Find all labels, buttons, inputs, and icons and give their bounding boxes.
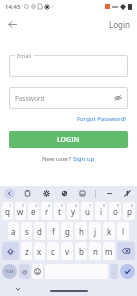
staticText: 2 [22,203,25,208]
button[interactable]: More [104,188,115,199]
staticText: d [37,226,42,237]
button[interactable]: Settings [41,188,52,199]
staticText: @ [22,268,28,276]
staticText: 3 [35,203,38,208]
staticText: y [71,206,76,217]
staticText: › [52,3,54,10]
staticText: 14:45 [5,3,21,11]
button[interactable]: f [47,222,59,240]
staticText: q [5,206,10,217]
staticText: ?123 [5,269,14,274]
staticText: v [65,246,70,257]
staticText: m [105,246,113,257]
button[interactable]: Clipboard [22,188,33,199]
button[interactable]: LOGIN [9,131,128,148]
button[interactable]: b [75,242,87,260]
staticText: 0 [131,203,134,208]
staticText: g [65,226,70,237]
button[interactable]: s [21,222,32,240]
staticText: k [107,226,112,237]
staticText: Password [15,94,45,103]
staticText: p [127,206,132,217]
button[interactable]: . [110,264,118,279]
button[interactable]: Translate [77,188,88,199]
staticText: Forgot Password! [77,115,126,123]
button[interactable]: Forgot Password! [75,114,128,124]
button[interactable]: r [41,202,52,220]
button[interactable]: Back [3,15,21,33]
button[interactable]: d [34,222,45,240]
button[interactable]: Hide keyboard [13,284,23,294]
button[interactable]: l [117,222,129,240]
staticText: h [79,226,84,237]
button[interactable]: z [21,242,32,260]
staticText: 9 [117,203,120,208]
staticText: 1 [9,203,12,208]
button[interactable]: Show password [112,92,124,104]
button[interactable]: @ [19,264,30,279]
staticText: LOGIN [57,135,80,145]
button[interactable]: t [54,202,65,220]
button[interactable]: Done [120,264,135,279]
staticText: Sign up [73,155,95,163]
staticText: j [94,226,97,237]
button[interactable]: k [103,222,115,240]
staticText: 8 [103,203,106,208]
button[interactable]: ?123 [2,264,17,279]
button[interactable]: n [89,242,101,260]
button[interactable]: Stickers [59,188,70,199]
button[interactable]: Shift [2,242,19,260]
staticText: r [45,206,49,217]
staticText: 5 [61,203,64,208]
staticText: . [113,268,115,276]
staticText: 7 [89,203,92,208]
staticText: 6 [75,203,78,208]
button[interactable]: Backspace [117,242,135,260]
button[interactable] [9,55,128,77]
staticText: n [93,246,98,257]
staticText: z [25,246,29,257]
button[interactable]: w [15,202,26,220]
button[interactable] [9,87,128,109]
button[interactable]: o [109,202,121,220]
button[interactable]: Expand toolbar [4,188,15,199]
button[interactable]: a [8,222,19,240]
staticText: New user? [42,155,73,163]
button[interactable]: v [61,242,73,260]
staticText: b [79,246,84,257]
staticText: w [17,206,24,217]
button[interactable]: Emoji [32,264,43,279]
button[interactable]: c [47,242,59,260]
button[interactable]: x [34,242,45,260]
staticText: e [31,206,36,217]
button[interactable]: p [123,202,135,220]
staticText: t [58,206,61,217]
staticText: o [113,206,118,217]
button[interactable]: i [95,202,107,220]
staticText: l [122,226,125,237]
button[interactable]: Voice typing off [122,188,133,199]
staticText: s [25,226,29,237]
staticText: i [100,206,103,217]
button[interactable]: g [61,222,73,240]
button[interactable]: y [67,202,79,220]
button[interactable]: q [2,202,13,220]
staticText: 4 [48,203,51,208]
button[interactable]: e [28,202,39,220]
staticText: x [37,246,42,257]
staticText: u [85,206,90,217]
button[interactable]: u [81,202,93,220]
staticText: f [52,226,55,237]
button[interactable]: Sign up [73,155,95,163]
button[interactable]: j [89,222,101,240]
staticText: Login [109,19,130,30]
button[interactable]: h [75,222,87,240]
button[interactable]: m [103,242,115,260]
staticText: Email [17,52,32,59]
staticText: a [11,226,16,237]
staticText: c [51,246,55,257]
